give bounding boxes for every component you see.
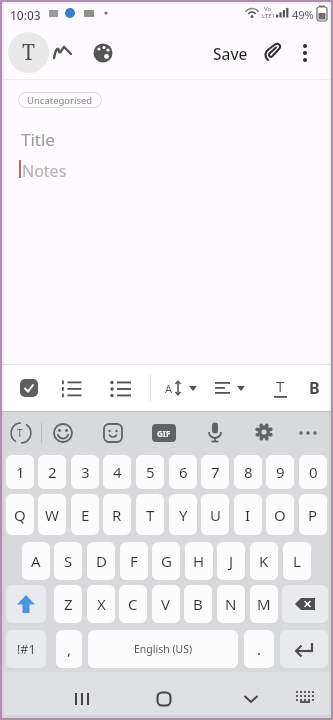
button[interactable]: 4: [103, 455, 131, 489]
button[interactable]: K: [250, 542, 278, 580]
button[interactable]: [68, 685, 96, 713]
button[interactable]: P: [299, 494, 327, 535]
staticText: S: [64, 551, 73, 571]
button[interactable]: Q: [6, 494, 34, 535]
button[interactable]: [297, 425, 321, 441]
button[interactable]: W: [38, 494, 66, 535]
staticText: T: [146, 505, 155, 525]
button[interactable]: R: [103, 494, 131, 535]
staticText: 9: [276, 462, 285, 482]
button[interactable]: [294, 689, 318, 709]
staticText: 0: [309, 462, 318, 482]
button[interactable]: [150, 685, 178, 713]
button[interactable]: [282, 585, 328, 623]
button[interactable]: S: [54, 542, 82, 580]
staticText: N: [225, 594, 237, 614]
button[interactable]: [109, 378, 133, 402]
button[interactable]: [204, 421, 226, 443]
button[interactable]: T: [8, 420, 34, 446]
staticText: GIF: [157, 428, 171, 439]
button[interactable]: English (US): [88, 630, 238, 668]
staticText: ,: [67, 639, 72, 659]
button[interactable]: 1: [6, 455, 34, 489]
button[interactable]: [90, 40, 116, 66]
button[interactable]: 3: [71, 455, 99, 489]
button[interactable]: [213, 375, 255, 401]
button[interactable]: M: [250, 585, 278, 623]
button[interactable]: .: [244, 630, 274, 668]
button[interactable]: F: [120, 542, 148, 580]
button[interactable]: [260, 40, 286, 66]
button[interactable]: [52, 422, 74, 444]
button[interactable]: V: [152, 585, 180, 623]
button[interactable]: C: [119, 585, 147, 623]
button[interactable]: [20, 379, 38, 397]
button[interactable]: T: [268, 375, 294, 401]
staticText: K: [259, 551, 269, 571]
button[interactable]: [6, 585, 46, 623]
button[interactable]: I: [234, 494, 262, 535]
button[interactable]: Y: [169, 494, 197, 535]
staticText: B: [309, 377, 320, 399]
button[interactable]: Uncategorised: [18, 92, 102, 108]
button[interactable]: 7: [201, 455, 229, 489]
button[interactable]: [50, 40, 76, 66]
staticText: LTE1: [262, 12, 276, 20]
staticText: Save: [213, 43, 248, 64]
staticText: D: [96, 551, 107, 571]
button[interactable]: 2: [38, 455, 66, 489]
staticText: 5: [146, 462, 155, 482]
button[interactable]: !#1: [6, 630, 46, 668]
staticText: Q: [14, 505, 26, 525]
button[interactable]: D: [87, 542, 115, 580]
button[interactable]: 0: [299, 455, 327, 489]
button[interactable]: Save: [206, 38, 255, 68]
staticText: W: [45, 505, 59, 525]
button[interactable]: X: [87, 585, 115, 623]
button[interactable]: T: [8, 32, 49, 73]
button[interactable]: L: [283, 542, 311, 580]
button[interactable]: G: [152, 542, 180, 580]
button[interactable]: T: [136, 494, 164, 535]
button[interactable]: [294, 38, 316, 68]
button[interactable]: 9: [266, 455, 294, 489]
button[interactable]: A: [22, 542, 50, 580]
button[interactable]: U: [201, 494, 229, 535]
staticText: Notes: [22, 160, 67, 182]
button[interactable]: 6: [169, 455, 197, 489]
button[interactable]: B: [306, 375, 328, 401]
button[interactable]: O: [266, 494, 294, 535]
staticText: T: [17, 426, 23, 440]
button[interactable]: [237, 685, 265, 713]
staticText: 6: [179, 462, 188, 482]
staticText: H: [193, 551, 205, 571]
staticText: X: [97, 594, 106, 614]
button[interactable]: A: [163, 375, 205, 401]
staticText: 1: [16, 462, 25, 482]
button[interactable]: N: [217, 585, 245, 623]
button[interactable]: B: [184, 585, 212, 623]
staticText: 4: [113, 462, 122, 482]
button[interactable]: [102, 422, 124, 444]
button[interactable]: Z: [54, 585, 82, 623]
button[interactable]: [280, 630, 328, 668]
staticText: Title: [21, 128, 55, 151]
staticText: P: [308, 505, 318, 525]
button[interactable]: [254, 422, 274, 442]
staticText: Z: [64, 594, 73, 614]
button[interactable]: 8: [234, 455, 262, 489]
staticText: L: [293, 551, 301, 571]
button[interactable]: 5: [136, 455, 164, 489]
button[interactable]: [61, 378, 83, 400]
staticText: M: [257, 594, 271, 614]
button[interactable]: E: [71, 494, 99, 535]
staticText: V: [161, 594, 171, 614]
staticText: Uncategorised: [27, 94, 93, 107]
button[interactable]: J: [217, 542, 245, 580]
button[interactable]: GIF: [152, 424, 176, 442]
staticText: 3: [81, 462, 90, 482]
staticText: I: [245, 505, 251, 525]
button[interactable]: ,: [56, 630, 82, 668]
staticText: R: [112, 505, 122, 525]
button[interactable]: H: [185, 542, 213, 580]
